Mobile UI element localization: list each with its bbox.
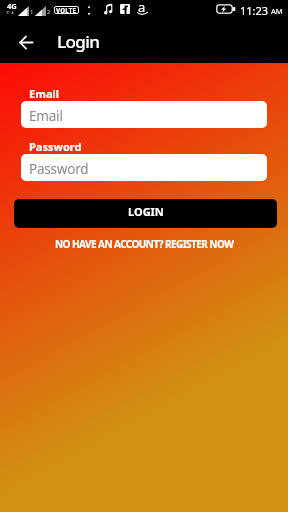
button[interactable]: Password [21,154,267,181]
staticText: AM [271,6,283,16]
button[interactable]: Back [7,24,44,61]
staticText: Password [29,160,89,178]
button[interactable]: LOGIN [14,199,277,228]
staticText: 4G [7,1,17,11]
staticText: Email [29,86,60,101]
staticText: NO HAVE AN ACCOUNT? REGISTER NOW [55,237,234,251]
staticText: Email [29,107,63,125]
staticText: 2 [47,8,51,16]
staticText: 1 [30,8,34,16]
button[interactable]: Email [21,101,267,128]
staticText: 11:23 [240,3,269,18]
staticText: Login [57,30,100,53]
staticText: Password [29,139,82,154]
button[interactable]: NO HAVE AN ACCOUNT? REGISTER NOW [0,236,288,251]
staticText: LOGIN [128,204,164,219]
staticText: VOLTE [56,6,77,14]
staticText: a [138,0,146,16]
